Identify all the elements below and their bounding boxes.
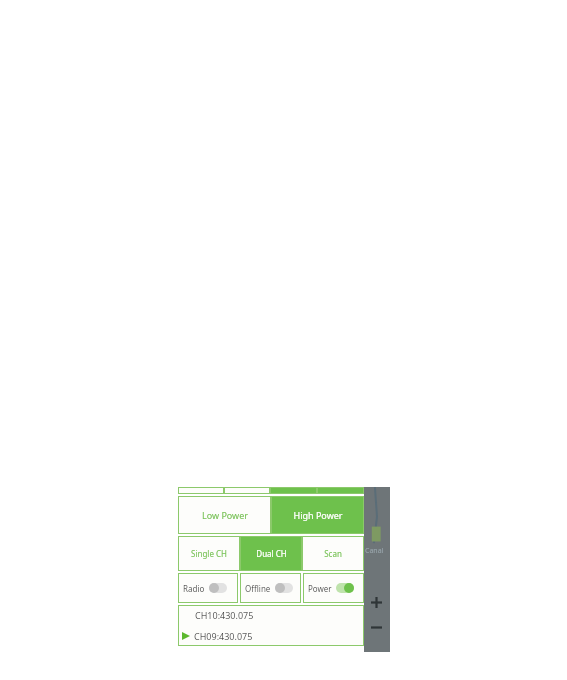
button[interactable]: Zoom in xyxy=(367,593,385,611)
staticText: Low Power xyxy=(202,509,248,521)
button[interactable]: CH10:430.075 xyxy=(178,605,364,625)
staticText: Offline xyxy=(245,583,271,594)
button[interactable] xyxy=(317,487,364,494)
staticText: Scan xyxy=(324,548,342,559)
staticText: Power xyxy=(308,583,332,594)
staticText: Dual CH xyxy=(256,548,287,559)
staticText: Radio xyxy=(183,583,205,594)
button[interactable]: Low Power xyxy=(178,496,271,534)
button[interactable]: Offline xyxy=(240,573,301,603)
staticText: Canal xyxy=(365,546,384,556)
staticText: High Power xyxy=(293,509,343,521)
button[interactable] xyxy=(224,487,270,494)
button[interactable] xyxy=(178,487,224,494)
button[interactable]: Single CH xyxy=(178,536,240,571)
staticText: CH10:430.075 xyxy=(195,609,254,621)
button[interactable]: Zoom out xyxy=(367,618,385,636)
staticText: CH09:430.075 xyxy=(194,630,253,642)
button[interactable]: Scan xyxy=(302,536,364,571)
button[interactable]: Radio xyxy=(178,573,238,603)
button[interactable]: High Power xyxy=(271,496,364,534)
button[interactable]: Power xyxy=(303,573,364,603)
staticText: Single CH xyxy=(191,548,227,559)
button[interactable]: Dual CH xyxy=(240,536,302,571)
button[interactable] xyxy=(270,487,317,494)
button[interactable]: CH09:430.075 xyxy=(178,625,364,646)
